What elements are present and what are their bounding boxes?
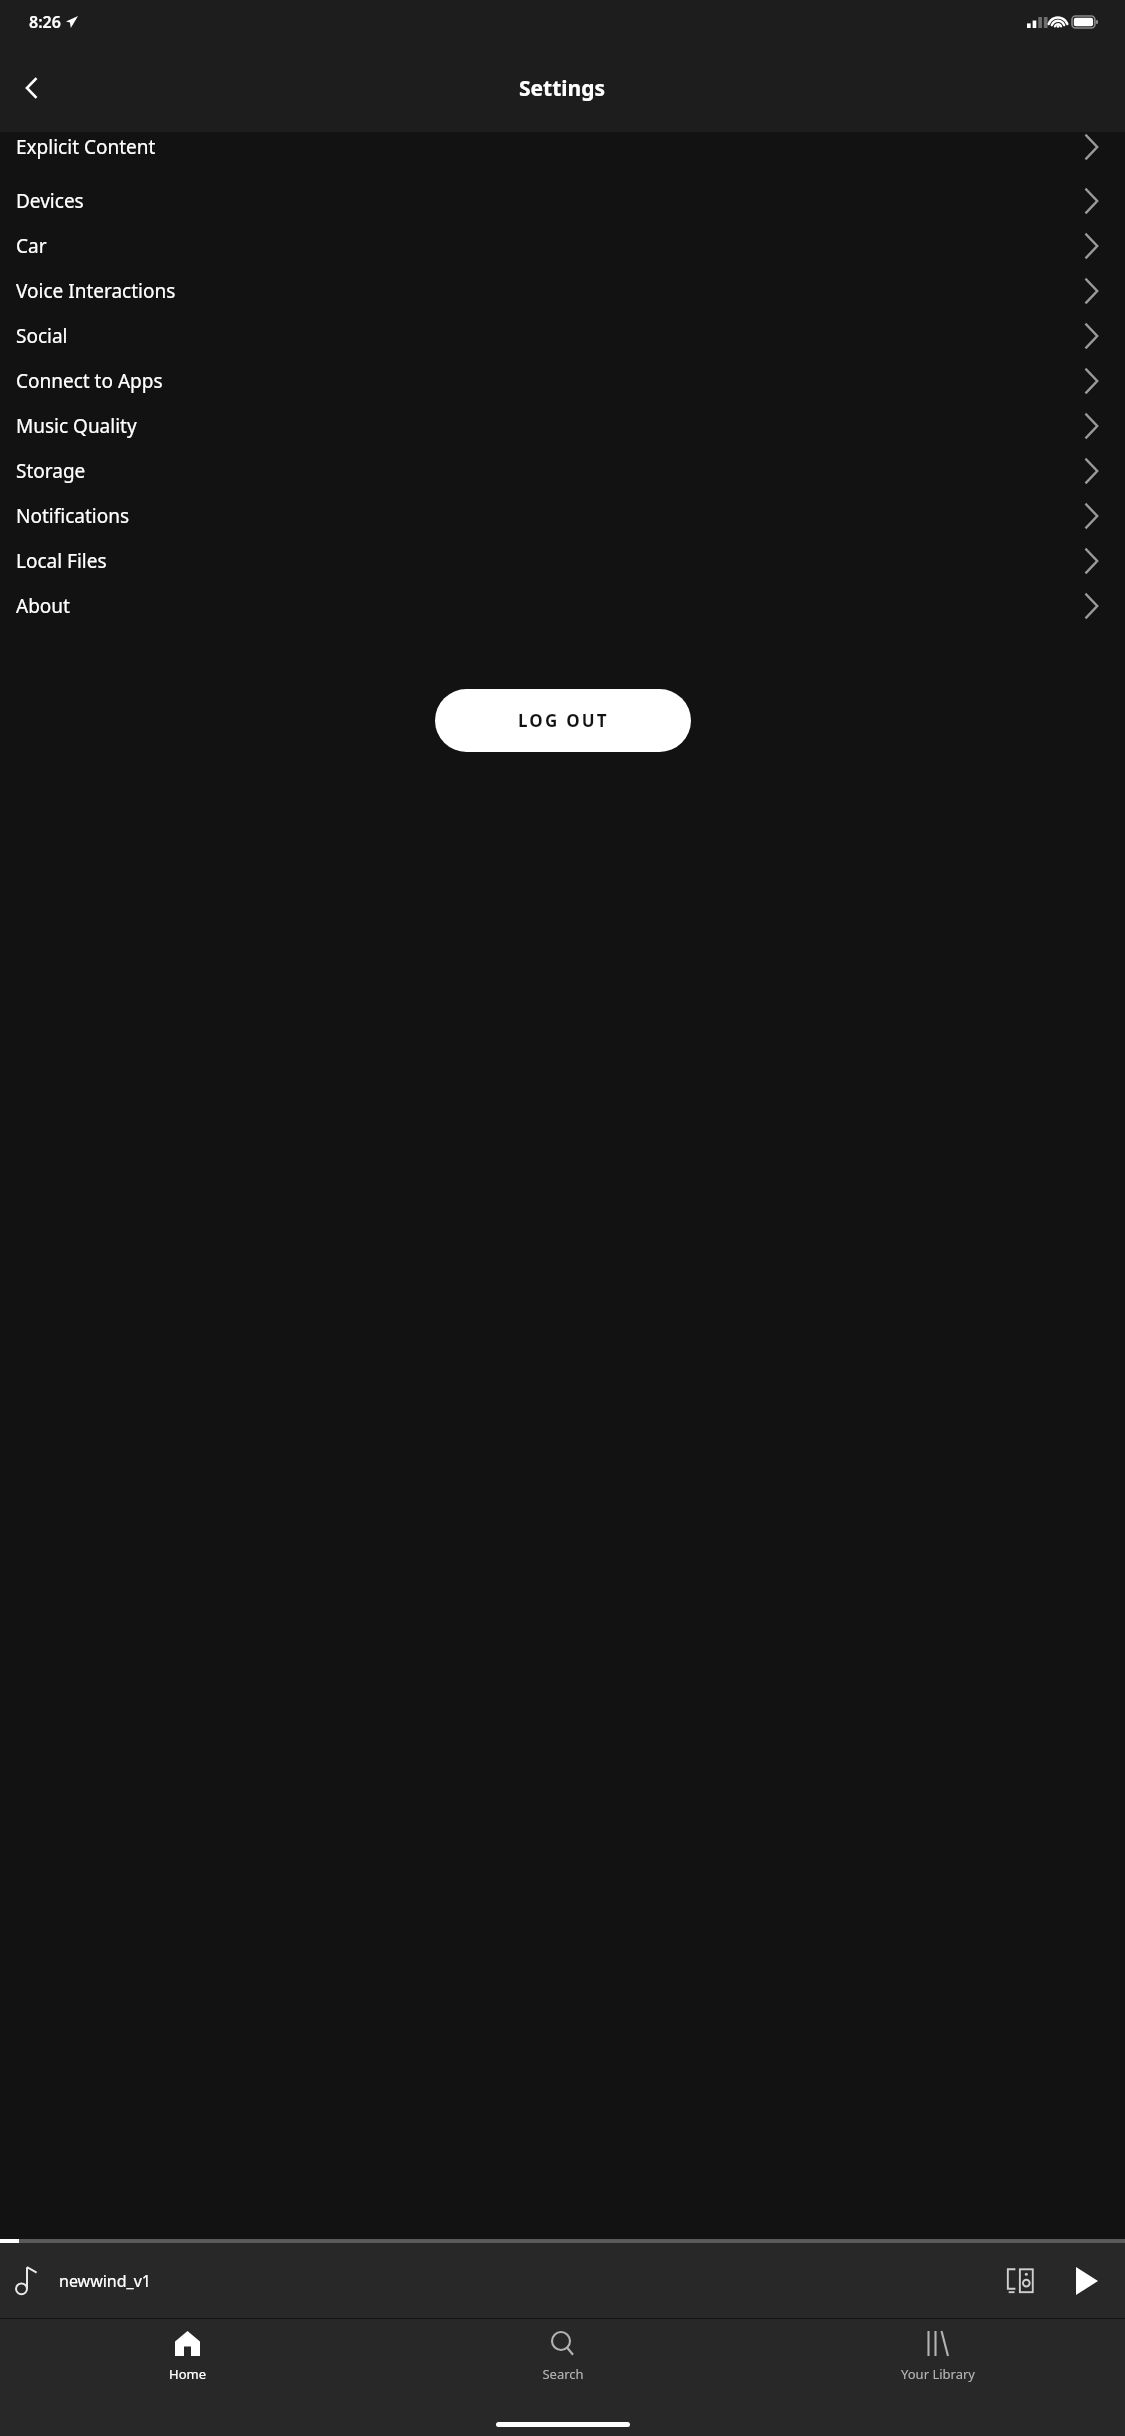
staticText: Notifications	[16, 503, 130, 529]
staticText: Settings	[519, 74, 606, 103]
staticText: 8:26	[29, 11, 61, 33]
staticText: Devices	[16, 188, 84, 214]
button[interactable]: Search	[375, 2319, 750, 2402]
button[interactable]: About	[0, 583, 1125, 628]
staticText: Voice Interactions	[16, 278, 176, 304]
button[interactable]: Voice Interactions	[0, 268, 1125, 313]
staticText: Local Files	[16, 548, 107, 574]
staticText: Social	[16, 323, 68, 349]
staticText: Connect to Apps	[16, 368, 163, 394]
button[interactable]: Play	[1061, 2255, 1113, 2307]
button[interactable]: Back	[6, 62, 58, 114]
button[interactable]: Social	[0, 313, 1125, 358]
staticText: Your Library	[901, 2365, 975, 2383]
staticText: newwind_v1	[59, 2270, 151, 2292]
staticText: LOG OUT	[518, 709, 609, 732]
button[interactable]: Home	[0, 2319, 375, 2402]
staticText: Car	[16, 233, 47, 259]
button[interactable]: Connect to a device	[995, 2255, 1047, 2307]
button[interactable]: Your Library	[750, 2319, 1125, 2402]
button[interactable]: Car	[0, 223, 1125, 268]
button[interactable]: Storage	[0, 448, 1125, 493]
staticText: Explicit Content	[16, 134, 156, 160]
staticText: Music Quality	[16, 413, 137, 439]
button[interactable]: newwind_v1	[0, 2243, 1125, 2318]
staticText: Search	[542, 2365, 584, 2383]
button[interactable]: Notifications	[0, 493, 1125, 538]
button[interactable]: Connect to Apps	[0, 358, 1125, 403]
button[interactable]: Devices	[0, 178, 1125, 223]
staticText: About	[16, 593, 70, 619]
button[interactable]: Music Quality	[0, 403, 1125, 448]
button[interactable]: LOG OUT	[435, 689, 691, 752]
button[interactable]: Local Files	[0, 538, 1125, 583]
staticText: Storage	[16, 458, 86, 484]
button[interactable]: Explicit Content	[0, 152, 1125, 178]
staticText: Home	[169, 2365, 206, 2383]
